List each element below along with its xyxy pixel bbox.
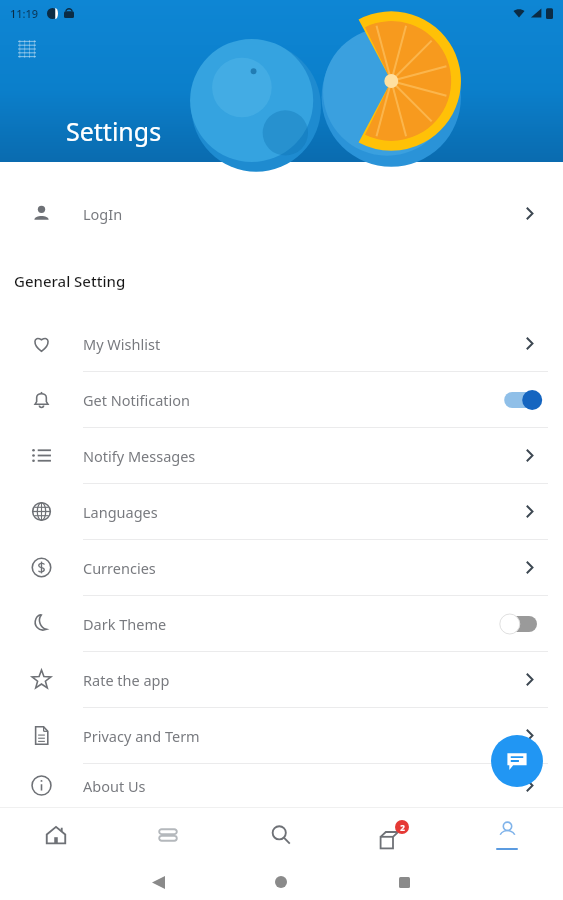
- staticText: Currencies: [83, 558, 522, 578]
- staticText: Get Notification: [83, 390, 501, 410]
- button[interactable]: Languages: [0, 484, 563, 540]
- staticText: Notify Messages: [83, 446, 522, 466]
- button[interactable]: LogIn: [0, 186, 563, 241]
- button[interactable]: Home: [266, 867, 296, 897]
- button[interactable]: Chat support: [491, 735, 543, 787]
- button[interactable]: About Us: [0, 764, 563, 807]
- staticText: LogIn: [83, 204, 522, 224]
- button[interactable]: Get Notification: [0, 372, 563, 428]
- button[interactable]: Notify Messages: [0, 428, 563, 484]
- staticText: Languages: [83, 502, 522, 522]
- button[interactable]: Currencies: [0, 540, 563, 596]
- staticText: Settings: [66, 114, 162, 148]
- button[interactable]: Back: [143, 867, 173, 897]
- button[interactable]: Categories: [112, 807, 224, 863]
- staticText: Privacy and Term: [83, 726, 522, 746]
- button[interactable]: My Wishlist: [0, 316, 563, 372]
- staticText: General Setting: [14, 271, 126, 291]
- button[interactable]: Menu: [12, 34, 42, 64]
- button[interactable]: Home: [0, 807, 112, 863]
- button[interactable]: Rate the app: [0, 652, 563, 708]
- button[interactable]: Search: [224, 807, 337, 863]
- staticText: 2: [400, 822, 405, 833]
- button[interactable]: Profile: [450, 807, 563, 863]
- staticText: 11:19: [10, 6, 39, 21]
- button[interactable]: Orders: [337, 807, 450, 863]
- staticText: Dark Theme: [83, 614, 501, 634]
- button[interactable]: Privacy and Term: [0, 708, 563, 764]
- staticText: Rate the app: [83, 670, 522, 690]
- button[interactable]: Recents: [389, 867, 419, 897]
- button[interactable]: Dark Theme: [0, 596, 563, 652]
- staticText: My Wishlist: [83, 334, 522, 354]
- staticText: About Us: [83, 776, 522, 796]
